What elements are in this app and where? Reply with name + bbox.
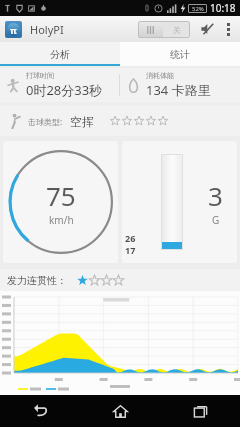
staticText: 10:18: [210, 1, 236, 15]
button[interactable]: 26: [122, 141, 237, 263]
staticText: km/h: [49, 213, 74, 227]
staticText: G: [212, 213, 220, 227]
button[interactable]: 发力连贯性：: [0, 269, 240, 291]
button[interactable]: 75: [3, 141, 118, 263]
staticText: 关: [173, 25, 181, 35]
staticText: 3: [208, 178, 223, 213]
button[interactable]: 统计: [120, 42, 240, 66]
staticText: 75: [46, 178, 76, 213]
button[interactable]: 消耗体能: [120, 68, 240, 102]
button[interactable]: Toggle: [138, 21, 190, 38]
staticText: 17: [125, 244, 136, 256]
staticText: 26: [125, 232, 136, 244]
button[interactable]: 分析: [0, 42, 120, 66]
staticText: 52%: [192, 5, 204, 13]
staticText: 发力连贯性：: [7, 274, 67, 287]
staticText: HolyPI: [30, 22, 64, 37]
button[interactable]: Mute: [197, 19, 217, 39]
staticText: 消耗体能: [146, 71, 174, 80]
staticText: 0时28分33秒: [26, 81, 103, 99]
button[interactable]: More options: [220, 16, 236, 42]
button[interactable]: Home: [80, 395, 160, 427]
staticText: 分析: [50, 48, 70, 61]
staticText: 击球类型:: [28, 116, 63, 127]
staticText: 统计: [170, 48, 190, 61]
staticText: 134 卡路里: [146, 81, 211, 99]
staticText: π: [10, 24, 17, 36]
staticText: 空挥: [70, 114, 94, 129]
button[interactable]: Recents: [160, 395, 240, 427]
button[interactable]: Back: [0, 395, 80, 427]
staticText: 打球时间: [26, 71, 54, 80]
button[interactable]: 打球时间: [0, 68, 119, 102]
button[interactable]: 击球类型:: [0, 106, 240, 136]
